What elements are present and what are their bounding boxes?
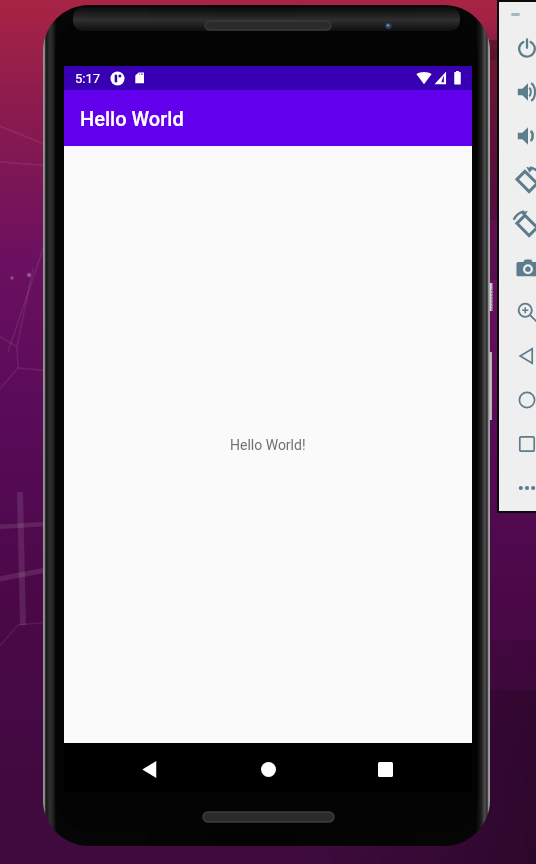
button[interactable]: Take screenshot [502, 246, 536, 290]
button[interactable]: Volume down [502, 114, 536, 158]
button[interactable]: Hello World [64, 90, 472, 146]
staticText: 5:17 [75, 71, 101, 86]
button[interactable]: Home [244, 745, 292, 793]
button[interactable]: Power [502, 26, 536, 70]
staticText: Hello World! [230, 437, 306, 453]
button[interactable]: Minimize [502, 2, 536, 26]
button[interactable]: Back [502, 334, 536, 378]
button[interactable]: Rotate left [502, 158, 536, 202]
button[interactable]: More [502, 466, 536, 510]
button[interactable]: Back [125, 745, 173, 793]
button[interactable]: Home [502, 378, 536, 422]
button[interactable]: Volume up [502, 70, 536, 114]
button[interactable]: Recents [361, 745, 409, 793]
button[interactable]: Zoom [502, 290, 536, 334]
staticText: Hello World [80, 107, 184, 130]
button[interactable]: Overview [502, 422, 536, 466]
button[interactable]: Rotate right [502, 202, 536, 246]
